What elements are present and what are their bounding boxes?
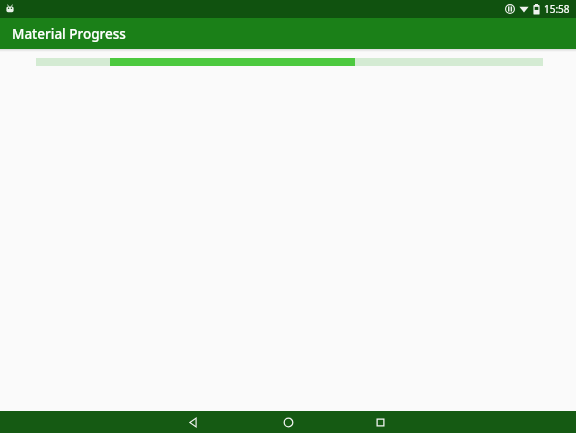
staticText: Material Progress — [12, 25, 126, 43]
button[interactable]: Back — [171, 411, 215, 433]
button[interactable]: Recent apps — [358, 411, 402, 433]
staticText: 15:58 — [544, 2, 570, 16]
button[interactable]: Home — [266, 411, 310, 433]
button[interactable]: Material Progress — [0, 18, 576, 49]
